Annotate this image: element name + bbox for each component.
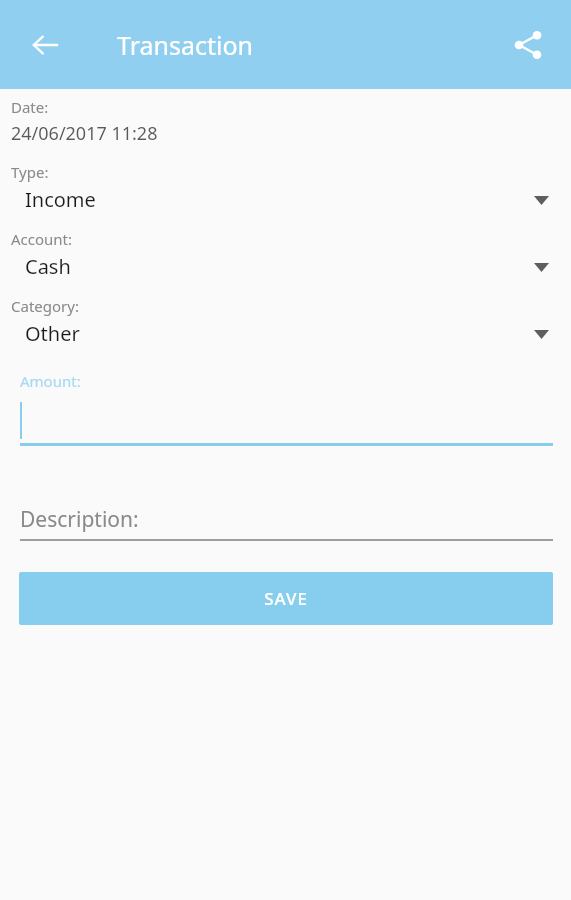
- button[interactable]: Type:: [0, 162, 571, 213]
- staticText: Type:: [11, 162, 49, 182]
- staticText: Other: [25, 320, 80, 347]
- staticText: Date:: [11, 97, 49, 117]
- staticText: Description:: [20, 505, 139, 534]
- staticText: Cash: [25, 253, 71, 280]
- button[interactable]: Description:: [0, 505, 571, 545]
- button[interactable]: Back: [18, 18, 72, 72]
- button[interactable]: Share: [501, 18, 555, 72]
- button[interactable]: Date:: [0, 97, 571, 146]
- button[interactable]: Category:: [0, 296, 571, 347]
- staticText: Transaction: [117, 28, 254, 62]
- staticText: SAVE: [264, 587, 308, 610]
- button[interactable]: Amount:: [0, 371, 571, 453]
- button[interactable]: SAVE: [19, 572, 553, 625]
- button[interactable]: Account:: [0, 229, 571, 280]
- staticText: 24/06/2017 11:28: [11, 121, 158, 146]
- staticText: Amount:: [20, 371, 81, 391]
- staticText: Income: [25, 186, 96, 213]
- staticText: Category:: [11, 296, 79, 316]
- staticText: Account:: [11, 229, 73, 249]
